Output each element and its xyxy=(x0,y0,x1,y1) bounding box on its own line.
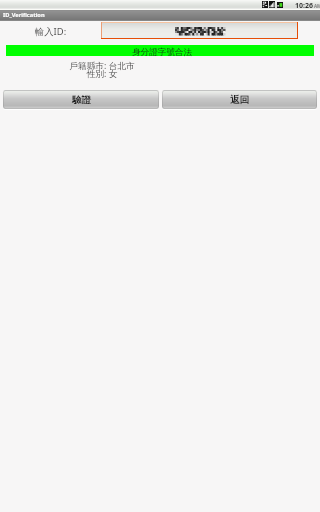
staticText: 輸入ID: xyxy=(0,25,101,38)
button[interactable]: 驗證 xyxy=(3,90,159,110)
staticText: AM xyxy=(314,3,320,9)
button[interactable] xyxy=(101,22,298,39)
button[interactable]: 返回 xyxy=(162,90,317,110)
staticText: 戶籍縣市: 台北市 xyxy=(0,60,204,72)
staticText: 返回 xyxy=(230,94,249,106)
staticText: 10:26 xyxy=(295,1,313,11)
staticText: ID_Verification xyxy=(3,11,45,19)
staticText: 驗證 xyxy=(72,94,91,106)
staticText: 性別: 女 xyxy=(0,68,204,80)
staticText: 身分證字號合法 xyxy=(132,47,193,58)
